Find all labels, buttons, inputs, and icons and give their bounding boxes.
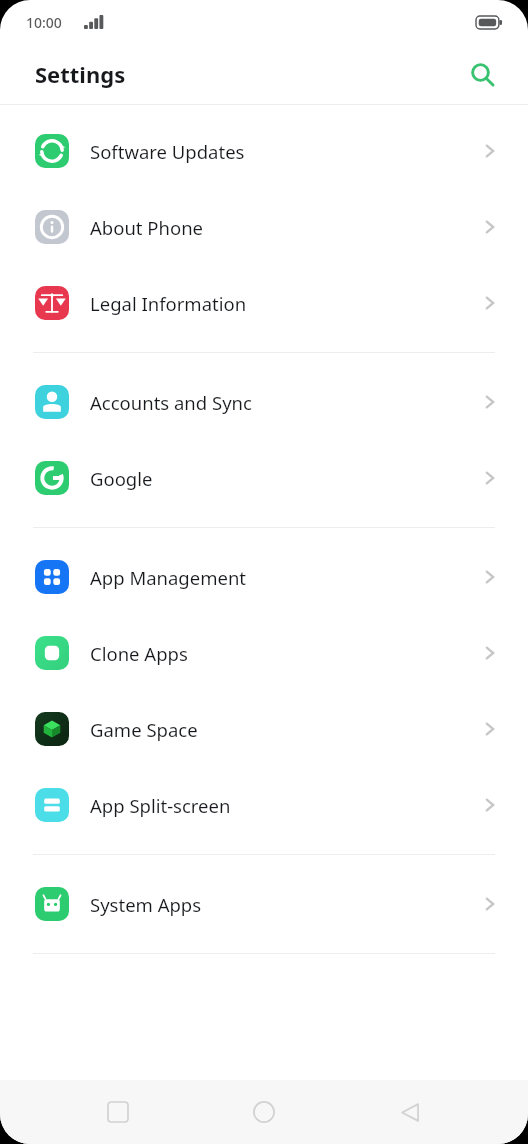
staticText: Software Updates [90,139,480,164]
button[interactable]: App Management [0,539,528,615]
button[interactable]: Clone Apps [0,615,528,691]
staticText: Settings [35,59,126,89]
button[interactable]: App Split-screen [0,767,528,843]
button[interactable]: Back [382,1084,438,1140]
staticText: Legal Information [90,291,480,316]
button[interactable]: Google [0,440,528,516]
button[interactable]: Accounts and Sync [0,364,528,440]
staticText: About Phone [90,215,480,240]
staticText: Accounts and Sync [90,390,480,415]
button[interactable]: Recent apps [90,1084,146,1140]
staticText: Google [90,466,480,491]
button[interactable]: Home [236,1084,292,1140]
button[interactable]: Game Space [0,691,528,767]
staticText: App Management [90,565,480,590]
button[interactable]: Legal Information [0,265,528,341]
button[interactable]: System Apps [0,866,528,942]
staticText: 10:00 [26,13,62,32]
staticText: App Split-screen [90,793,480,818]
button[interactable]: About Phone [0,189,528,265]
button[interactable]: Search [460,52,504,96]
button[interactable]: Software Updates [0,113,528,189]
staticText: Clone Apps [90,641,480,666]
staticText: System Apps [90,892,480,917]
staticText: Game Space [90,717,480,742]
